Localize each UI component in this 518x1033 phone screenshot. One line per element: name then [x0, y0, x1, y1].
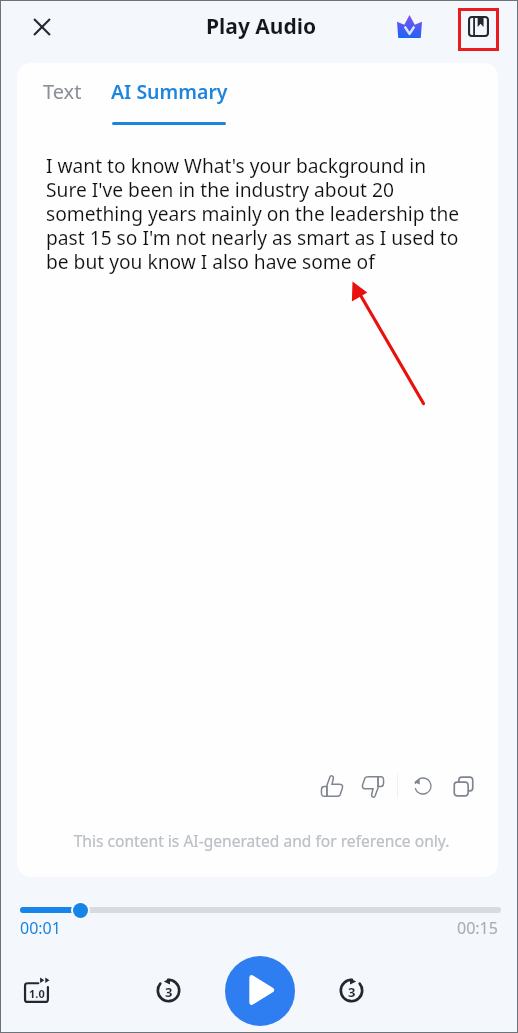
button[interactable]: Copy [441, 764, 485, 808]
staticText: Play Audio [206, 12, 317, 41]
button[interactable]: Playback speed [15, 968, 59, 1012]
staticText: 3 [165, 983, 173, 1001]
button[interactable]: Premium [389, 6, 429, 46]
staticText: I want to know What's your background in… [46, 152, 466, 274]
staticText: This content is AI-generated and for ref… [21, 830, 498, 851]
staticText: Text [43, 78, 82, 105]
button[interactable]: AI Summary [101, 70, 238, 113]
staticText: 00:01 [20, 917, 61, 939]
button[interactable]: Regenerate [401, 764, 445, 808]
button[interactable]: Forward 3 seconds [329, 968, 373, 1012]
button[interactable]: Rewind 3 seconds [146, 968, 190, 1012]
button[interactable]: Save [458, 8, 499, 51]
button[interactable]: Dislike [351, 764, 395, 808]
button[interactable]: Play [225, 956, 295, 1026]
staticText: 1.0 [29, 986, 45, 1001]
button[interactable]: Text [33, 70, 92, 113]
staticText: 00:15 [457, 917, 498, 939]
button[interactable]: Like [310, 764, 354, 808]
button[interactable]: Close [21, 6, 62, 47]
staticText: 3 [348, 983, 356, 1001]
button[interactable]: Seek position [71, 901, 90, 920]
staticText: AI Summary [111, 78, 228, 105]
